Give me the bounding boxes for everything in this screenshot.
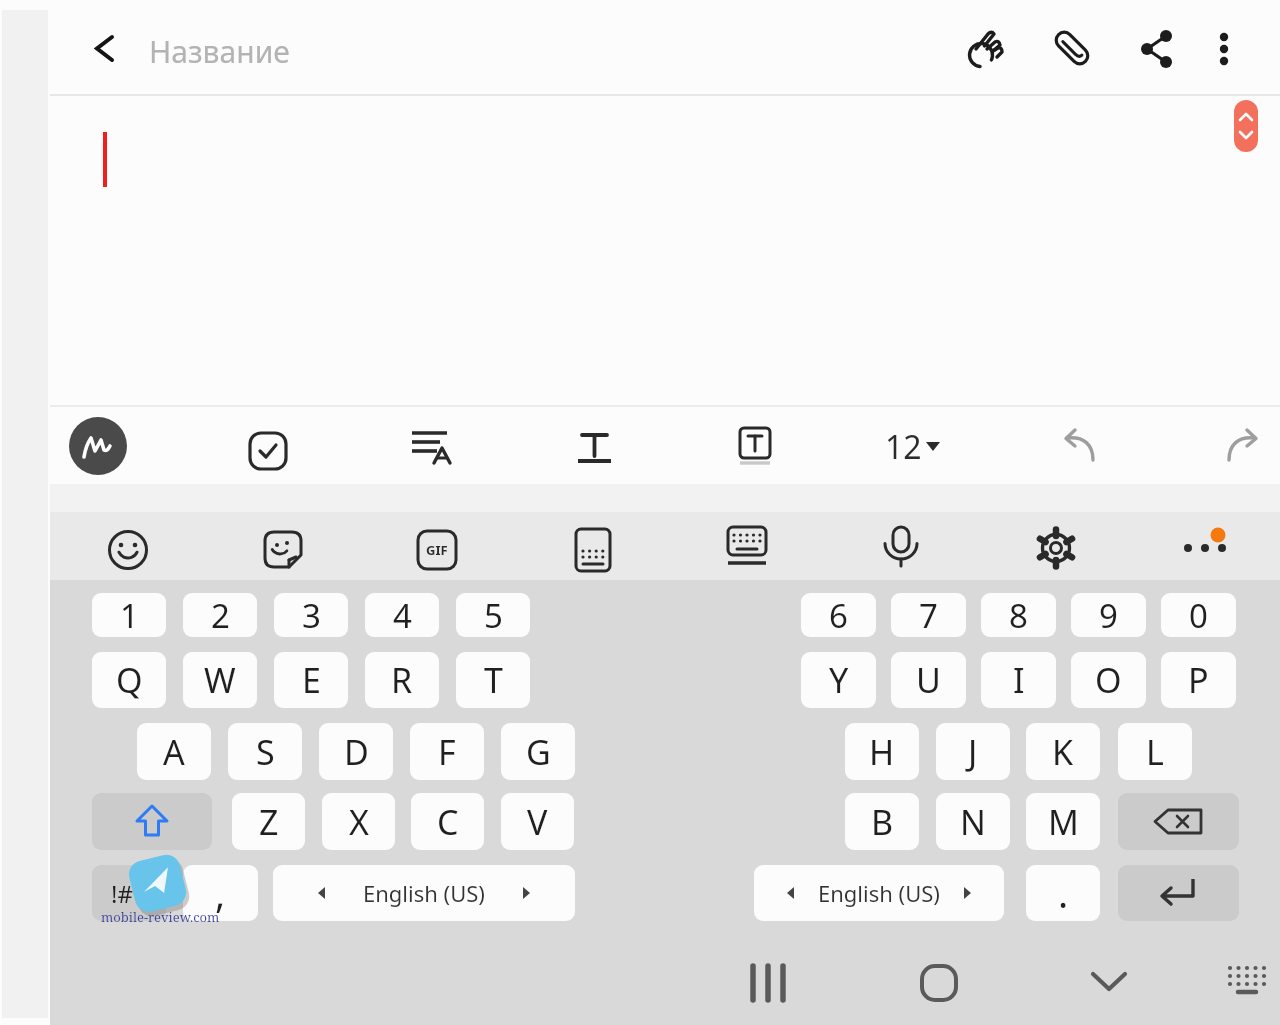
button[interactable]: X bbox=[322, 793, 395, 850]
button[interactable]: Y bbox=[801, 652, 876, 708]
button[interactable]: 2 bbox=[183, 593, 257, 637]
staticText: 0 bbox=[1189, 593, 1208, 637]
button[interactable]: 0 bbox=[1161, 593, 1236, 637]
button[interactable]: F bbox=[410, 723, 484, 780]
button[interactable]: . bbox=[1026, 865, 1100, 921]
button[interactable] bbox=[242, 424, 294, 476]
button[interactable]: 8 bbox=[981, 593, 1056, 637]
button[interactable]: R bbox=[365, 652, 439, 708]
staticText: Название bbox=[149, 31, 290, 72]
staticText: 4 bbox=[393, 593, 412, 637]
button[interactable] bbox=[566, 420, 622, 476]
staticText: GIF bbox=[426, 541, 448, 559]
button[interactable] bbox=[1162, 516, 1238, 580]
button[interactable] bbox=[1215, 419, 1271, 475]
button[interactable]: Q bbox=[92, 652, 166, 708]
button[interactable]: J bbox=[936, 723, 1010, 780]
button[interactable]: V bbox=[501, 793, 574, 850]
button[interactable]: GIF bbox=[409, 522, 465, 578]
staticText: E bbox=[302, 657, 321, 703]
button[interactable] bbox=[1128, 21, 1184, 77]
button[interactable]: M bbox=[1026, 793, 1100, 850]
staticText: 2 bbox=[211, 593, 230, 637]
button[interactable] bbox=[1028, 520, 1084, 576]
button[interactable]: 3 bbox=[274, 593, 348, 637]
staticText: I bbox=[1013, 657, 1025, 703]
button[interactable] bbox=[69, 417, 127, 475]
staticText: G bbox=[526, 729, 551, 775]
button[interactable]: B bbox=[845, 793, 919, 850]
button[interactable]: P bbox=[1161, 652, 1236, 708]
button[interactable]: L bbox=[1118, 723, 1192, 780]
button[interactable]: Z bbox=[232, 793, 305, 850]
staticText: R bbox=[391, 657, 413, 703]
button[interactable]: English (US) bbox=[754, 865, 1004, 921]
button[interactable]: H bbox=[845, 723, 919, 780]
button[interactable] bbox=[100, 522, 156, 578]
staticText: V bbox=[527, 799, 548, 845]
button[interactable]: !#1 bbox=[92, 865, 166, 921]
staticText: mobile-review.com bbox=[101, 908, 220, 926]
button[interactable]: T bbox=[456, 652, 530, 708]
button[interactable]: S bbox=[228, 723, 302, 780]
button[interactable]: E bbox=[274, 652, 348, 708]
button[interactable] bbox=[1118, 793, 1239, 850]
button[interactable]: K bbox=[1026, 723, 1100, 780]
button[interactable]: 4 bbox=[365, 593, 439, 637]
button[interactable]: A bbox=[137, 723, 211, 780]
button[interactable] bbox=[565, 522, 621, 578]
button[interactable]: I bbox=[981, 652, 1056, 708]
button[interactable]: O bbox=[1071, 652, 1146, 708]
button[interactable] bbox=[1234, 100, 1258, 152]
button[interactable] bbox=[1085, 958, 1133, 1006]
staticText: Q bbox=[116, 657, 143, 703]
button[interactable]: 6 bbox=[801, 593, 876, 637]
staticText: , bbox=[215, 867, 226, 919]
button[interactable]: W bbox=[183, 652, 257, 708]
button[interactable]: , bbox=[183, 865, 258, 921]
staticText: 5 bbox=[484, 593, 503, 637]
button[interactable]: U bbox=[891, 652, 966, 708]
button[interactable] bbox=[408, 424, 472, 472]
button[interactable] bbox=[1200, 21, 1248, 77]
button[interactable] bbox=[872, 520, 928, 576]
button[interactable]: N bbox=[936, 793, 1010, 850]
button[interactable]: D bbox=[319, 723, 393, 780]
button[interactable]: 5 bbox=[456, 593, 530, 637]
staticText: P bbox=[1188, 657, 1209, 703]
staticText: Y bbox=[829, 657, 849, 703]
button[interactable]: C bbox=[411, 793, 484, 850]
staticText: M bbox=[1048, 799, 1079, 845]
button[interactable] bbox=[1222, 955, 1274, 1007]
button[interactable] bbox=[740, 958, 800, 1006]
button[interactable] bbox=[1051, 419, 1107, 475]
button[interactable]: 1 bbox=[92, 593, 166, 637]
button[interactable]: G bbox=[501, 723, 575, 780]
staticText: English (US) bbox=[363, 878, 485, 908]
button[interactable] bbox=[255, 522, 311, 578]
staticText: !#1 bbox=[111, 877, 147, 910]
button[interactable]: English (US) bbox=[273, 865, 575, 921]
button[interactable]: 12 bbox=[876, 424, 950, 472]
staticText: English (US) bbox=[818, 878, 940, 908]
staticText: J bbox=[968, 729, 978, 775]
staticText: L bbox=[1146, 729, 1164, 775]
button[interactable] bbox=[80, 24, 128, 72]
button[interactable] bbox=[92, 793, 212, 850]
button[interactable]: 7 bbox=[891, 593, 966, 637]
button[interactable] bbox=[957, 21, 1013, 77]
button[interactable] bbox=[1044, 19, 1100, 75]
staticText: A bbox=[163, 729, 185, 775]
staticText: 6 bbox=[829, 593, 848, 637]
button[interactable] bbox=[727, 420, 783, 476]
staticText: K bbox=[1052, 729, 1074, 775]
staticText: X bbox=[349, 799, 369, 845]
button[interactable] bbox=[1118, 865, 1239, 921]
staticText: 12 bbox=[885, 425, 922, 469]
staticText: S bbox=[256, 729, 275, 775]
button[interactable] bbox=[719, 516, 775, 572]
button[interactable]: 9 bbox=[1071, 593, 1146, 637]
button[interactable] bbox=[915, 960, 963, 1008]
staticText: 9 bbox=[1099, 593, 1118, 637]
staticText: U bbox=[916, 657, 941, 703]
